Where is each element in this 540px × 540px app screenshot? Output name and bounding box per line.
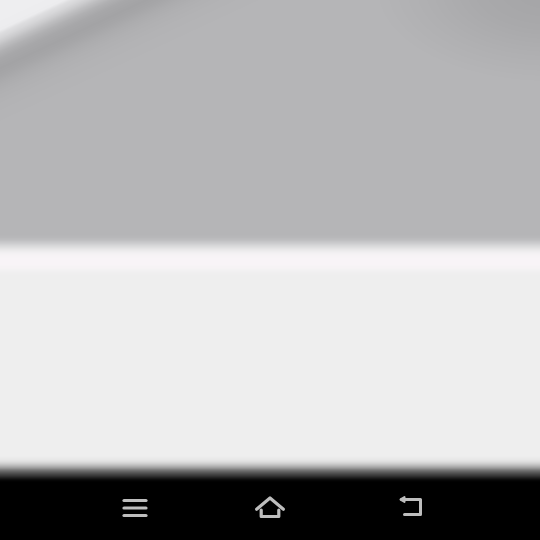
button[interactable]: Home [240,479,300,537]
button[interactable]: Recent apps [105,479,165,537]
button[interactable]: Header photo [0,0,540,280]
button[interactable]: Back [382,478,442,536]
